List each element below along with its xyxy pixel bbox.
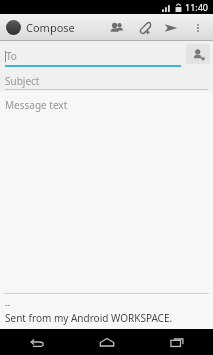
button[interactable]: Attach file <box>130 14 157 41</box>
button[interactable]: Add contact <box>186 44 210 64</box>
button[interactable]: Back <box>0 329 71 355</box>
staticText: Subject <box>5 74 40 88</box>
button[interactable]: Compose <box>0 14 79 41</box>
button[interactable]: Recent apps <box>142 329 213 355</box>
button[interactable]: More options <box>184 14 211 41</box>
staticText: Sent from my Android WORKSPACE. <box>5 311 173 325</box>
button[interactable]: Message text <box>0 91 213 293</box>
staticText: -- <box>5 299 11 310</box>
staticText: To <box>6 49 17 63</box>
button[interactable]: Home <box>71 329 142 355</box>
staticText: 11:40 <box>185 1 209 13</box>
staticText: Compose <box>26 20 75 35</box>
button[interactable]: Add recipients <box>103 14 130 41</box>
button[interactable]: To <box>5 49 181 67</box>
button[interactable]: Subject <box>5 72 208 90</box>
staticText: Message text <box>5 98 68 112</box>
button[interactable]: Send <box>157 14 184 41</box>
